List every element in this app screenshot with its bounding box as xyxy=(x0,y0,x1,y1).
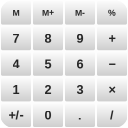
staticText: 4 xyxy=(12,57,19,71)
staticText: % xyxy=(108,8,116,18)
staticText: 6 xyxy=(76,57,83,71)
staticText: 3 xyxy=(76,82,83,97)
button[interactable]: +/- xyxy=(0,102,32,128)
button[interactable]: − xyxy=(96,51,128,77)
staticText: 5 xyxy=(44,57,51,71)
staticText: 1 xyxy=(12,82,19,97)
button[interactable]: 3 xyxy=(64,77,96,102)
button[interactable]: 7 xyxy=(0,26,32,51)
button[interactable]: . xyxy=(64,102,96,128)
button[interactable]: % xyxy=(96,0,128,26)
staticText: 8 xyxy=(44,31,51,45)
button[interactable]: 4 xyxy=(0,51,32,77)
staticText: M+ xyxy=(42,8,54,18)
staticText: 0 xyxy=(44,108,51,122)
button[interactable]: 6 xyxy=(64,51,96,77)
button[interactable]: 9 xyxy=(64,26,96,51)
button[interactable]: 1 xyxy=(0,77,32,102)
button[interactable]: × xyxy=(96,77,128,102)
staticText: − xyxy=(108,57,115,71)
staticText: 7 xyxy=(12,31,19,45)
staticText: × xyxy=(108,82,115,97)
staticText: + xyxy=(108,31,115,45)
staticText: . xyxy=(78,108,82,122)
button[interactable]: M- xyxy=(64,0,96,26)
button[interactable]: 0 xyxy=(32,102,64,128)
staticText: 9 xyxy=(76,31,83,45)
button[interactable]: 5 xyxy=(32,51,64,77)
button[interactable]: M xyxy=(0,0,32,26)
button[interactable]: 2 xyxy=(32,77,64,102)
staticText: +/- xyxy=(8,108,23,122)
button[interactable]: M+ xyxy=(32,0,64,26)
staticText: M- xyxy=(75,8,85,18)
staticText: M xyxy=(12,8,19,18)
staticText: / xyxy=(110,108,114,122)
button[interactable]: 8 xyxy=(32,26,64,51)
staticText: 2 xyxy=(44,82,51,97)
button[interactable]: + xyxy=(96,26,128,51)
button[interactable]: / xyxy=(96,102,128,128)
